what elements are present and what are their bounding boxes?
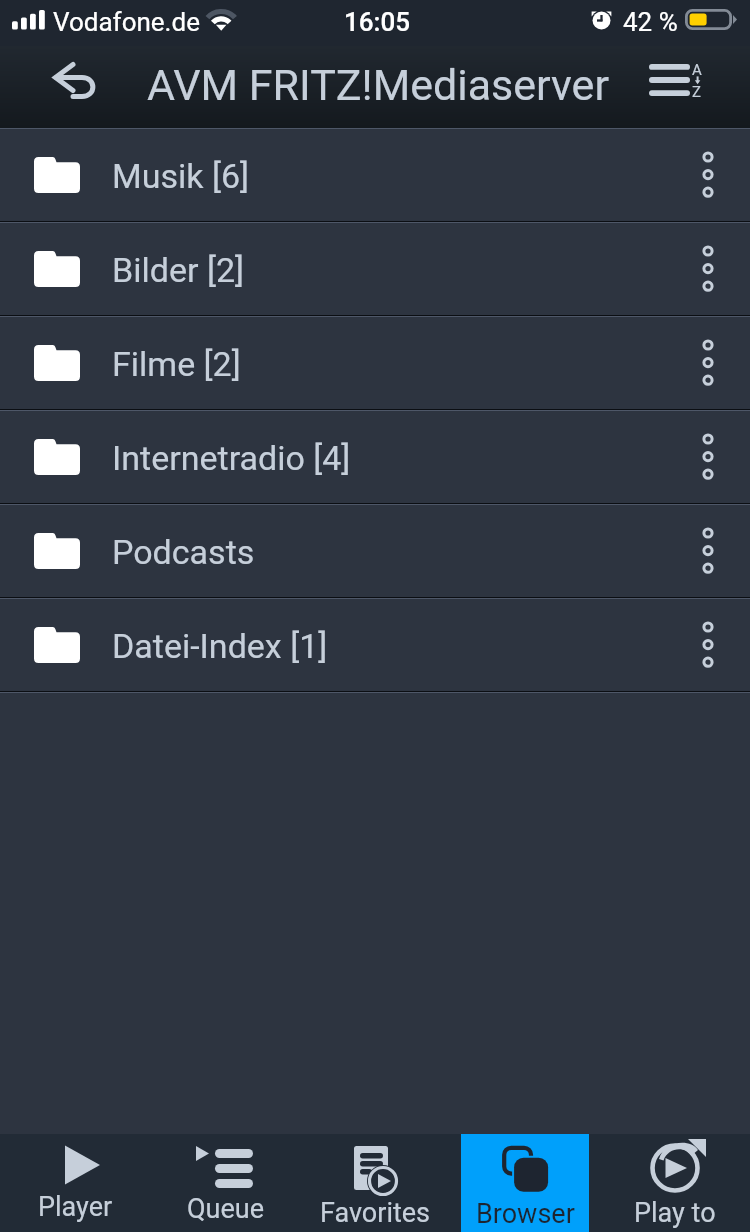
staticText: Filme [2] [112,344,241,384]
staticText: 16:05 [344,7,411,37]
button[interactable]: Internetradio [4] [0,411,750,503]
button[interactable]: More options [666,223,750,315]
staticText: Play to [634,1197,716,1229]
staticText: Internetradio [4] [112,438,351,478]
button[interactable]: Play to [611,1134,739,1232]
staticText: Z [692,83,701,101]
staticText: Favorites [320,1197,431,1229]
staticText: A [692,61,702,79]
button[interactable]: Favorites [311,1134,439,1232]
button[interactable]: Player [11,1134,139,1232]
button[interactable]: Bilder [2] [0,223,750,315]
staticText: Browser [476,1198,575,1230]
button[interactable]: Datei-Index [1] [0,599,750,691]
staticText: Datei-Index [1] [112,626,328,666]
button[interactable]: Browser [461,1134,589,1232]
button[interactable]: Queue [161,1134,289,1232]
staticText: Musik [6] [112,156,250,196]
button[interactable]: More options [666,505,750,597]
staticText: Player [38,1191,113,1223]
button[interactable]: Podcasts [0,505,750,597]
button[interactable]: Filme [2] [0,317,750,409]
staticText: Podcasts [112,532,255,572]
button[interactable]: More options [666,129,750,221]
staticText: Queue [187,1193,264,1225]
staticText: Vodafone.de [53,7,200,37]
staticText: Bilder [2] [112,250,245,290]
button[interactable]: Musik [6] [0,129,750,221]
staticText: 42 % [623,7,678,37]
button[interactable]: Sort A to Z [650,46,750,128]
button[interactable]: Back [0,46,147,128]
staticText: AVM FRITZ!Mediaserver [147,60,609,110]
button[interactable]: More options [666,317,750,409]
button[interactable]: More options [666,599,750,691]
button[interactable]: More options [666,411,750,503]
